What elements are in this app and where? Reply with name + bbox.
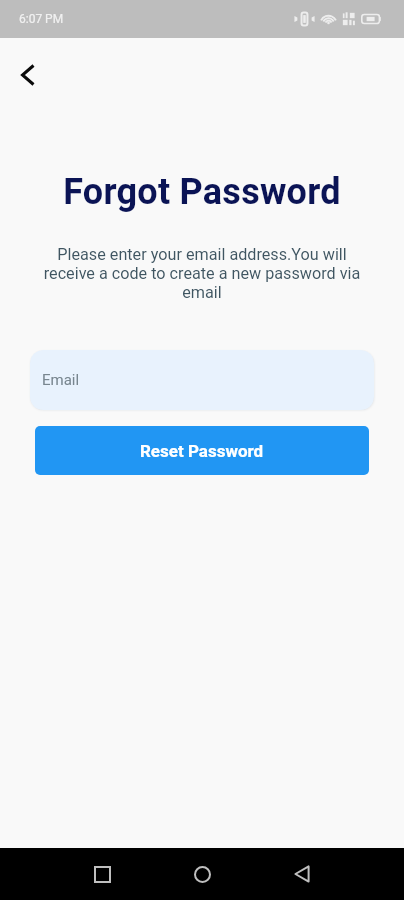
button[interactable]: Reset Password [35,426,369,475]
staticText: Reset Password [140,441,264,461]
staticText: Please enter your email address.You will… [37,245,367,302]
button[interactable]: Home [180,852,224,896]
button[interactable]: Email [30,350,374,410]
staticText: Email [42,371,80,389]
staticText: 6:07 PM [19,12,64,26]
button[interactable]: Back [280,852,324,896]
button[interactable]: Recent apps [80,852,124,896]
staticText: Forgot Password [0,171,404,213]
button[interactable]: Back [8,55,48,95]
